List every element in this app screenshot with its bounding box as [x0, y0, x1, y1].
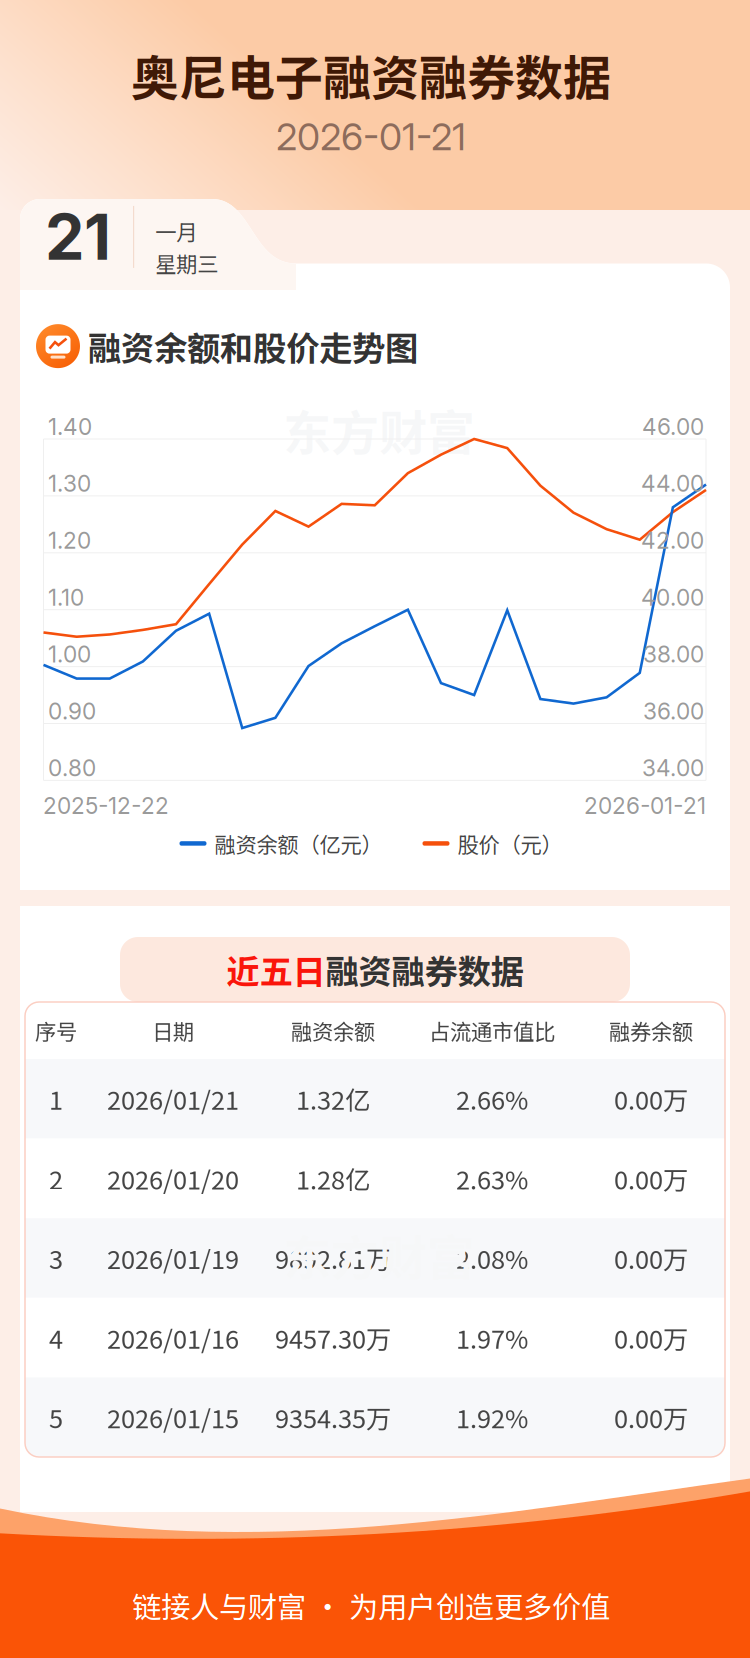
staticText: 2: [49, 1160, 63, 1197]
staticText: 34.00: [642, 754, 704, 782]
staticText: 46.00: [642, 413, 704, 440]
staticText: 2026/01/16: [107, 1319, 239, 1356]
staticText: 东方财富: [283, 1220, 475, 1289]
staticText: 0.80: [48, 754, 96, 782]
staticText: 1: [49, 1080, 63, 1117]
staticText: 9892.81万: [275, 1240, 391, 1276]
staticText: 2026-01-21: [584, 792, 706, 819]
staticText: 2026-01-21: [276, 114, 466, 159]
staticText: 2026/01/21: [107, 1080, 239, 1117]
staticText: 占流通市值比: [429, 1015, 555, 1046]
staticText: 36.00: [643, 697, 704, 725]
staticText: 0.00万: [614, 1240, 688, 1276]
staticText: 奥尼电子融资融券数据: [131, 40, 611, 109]
staticText: 3: [49, 1240, 63, 1276]
staticText: 2.66%: [456, 1080, 528, 1117]
staticText: 1.28亿: [296, 1160, 370, 1197]
staticText: 融资余额和股价走势图: [88, 322, 418, 370]
staticText: 42.00: [641, 527, 704, 554]
staticText: 1.92%: [456, 1399, 528, 1436]
staticText: 0.00万: [614, 1080, 688, 1117]
staticText: 日期: [152, 1015, 194, 1046]
staticText: 序号: [35, 1015, 77, 1046]
staticText: 40.00: [641, 584, 704, 611]
staticText: 融券余额: [609, 1015, 693, 1046]
staticText: 融资融券数据: [325, 945, 523, 994]
staticText: 1.20: [48, 527, 91, 554]
staticText: 融资余额（亿元）: [214, 828, 382, 859]
staticText: 5: [49, 1399, 63, 1436]
staticText: 1.32亿: [296, 1080, 370, 1117]
staticText: 股价（元）: [457, 828, 562, 859]
staticText: 0.90: [48, 697, 96, 725]
staticText: 星期三: [155, 247, 218, 278]
staticText: 2.08%: [456, 1240, 528, 1276]
staticText: 融资余额: [291, 1015, 375, 1046]
staticText: 2.63%: [456, 1160, 528, 1197]
staticText: 1.00: [48, 641, 91, 668]
staticText: 2026/01/15: [107, 1399, 239, 1436]
staticText: 1.30: [48, 470, 91, 497]
staticText: 东方财富: [283, 395, 475, 464]
staticText: 一月: [155, 215, 197, 246]
staticText: 9354.35万: [275, 1399, 391, 1436]
staticText: 近五日: [226, 945, 325, 994]
staticText: 4: [49, 1319, 63, 1356]
staticText: 0.00万: [614, 1160, 688, 1197]
staticText: 0.00万: [614, 1319, 688, 1356]
staticText: 0.00万: [614, 1399, 688, 1436]
staticText: 链接人与财富 · 为用户创造更多价值: [132, 1584, 610, 1626]
staticText: 2025-12-22: [43, 792, 169, 819]
staticText: 1.40: [48, 413, 92, 440]
staticText: 38.00: [643, 641, 704, 668]
staticText: 2026/01/20: [107, 1160, 239, 1197]
staticText: 1.10: [48, 584, 84, 611]
staticText: 44.00: [641, 470, 704, 497]
staticText: 9457.30万: [275, 1319, 391, 1356]
staticText: 2026/01/19: [107, 1240, 239, 1276]
staticText: 1.97%: [456, 1319, 528, 1356]
staticText: 21: [45, 199, 111, 275]
